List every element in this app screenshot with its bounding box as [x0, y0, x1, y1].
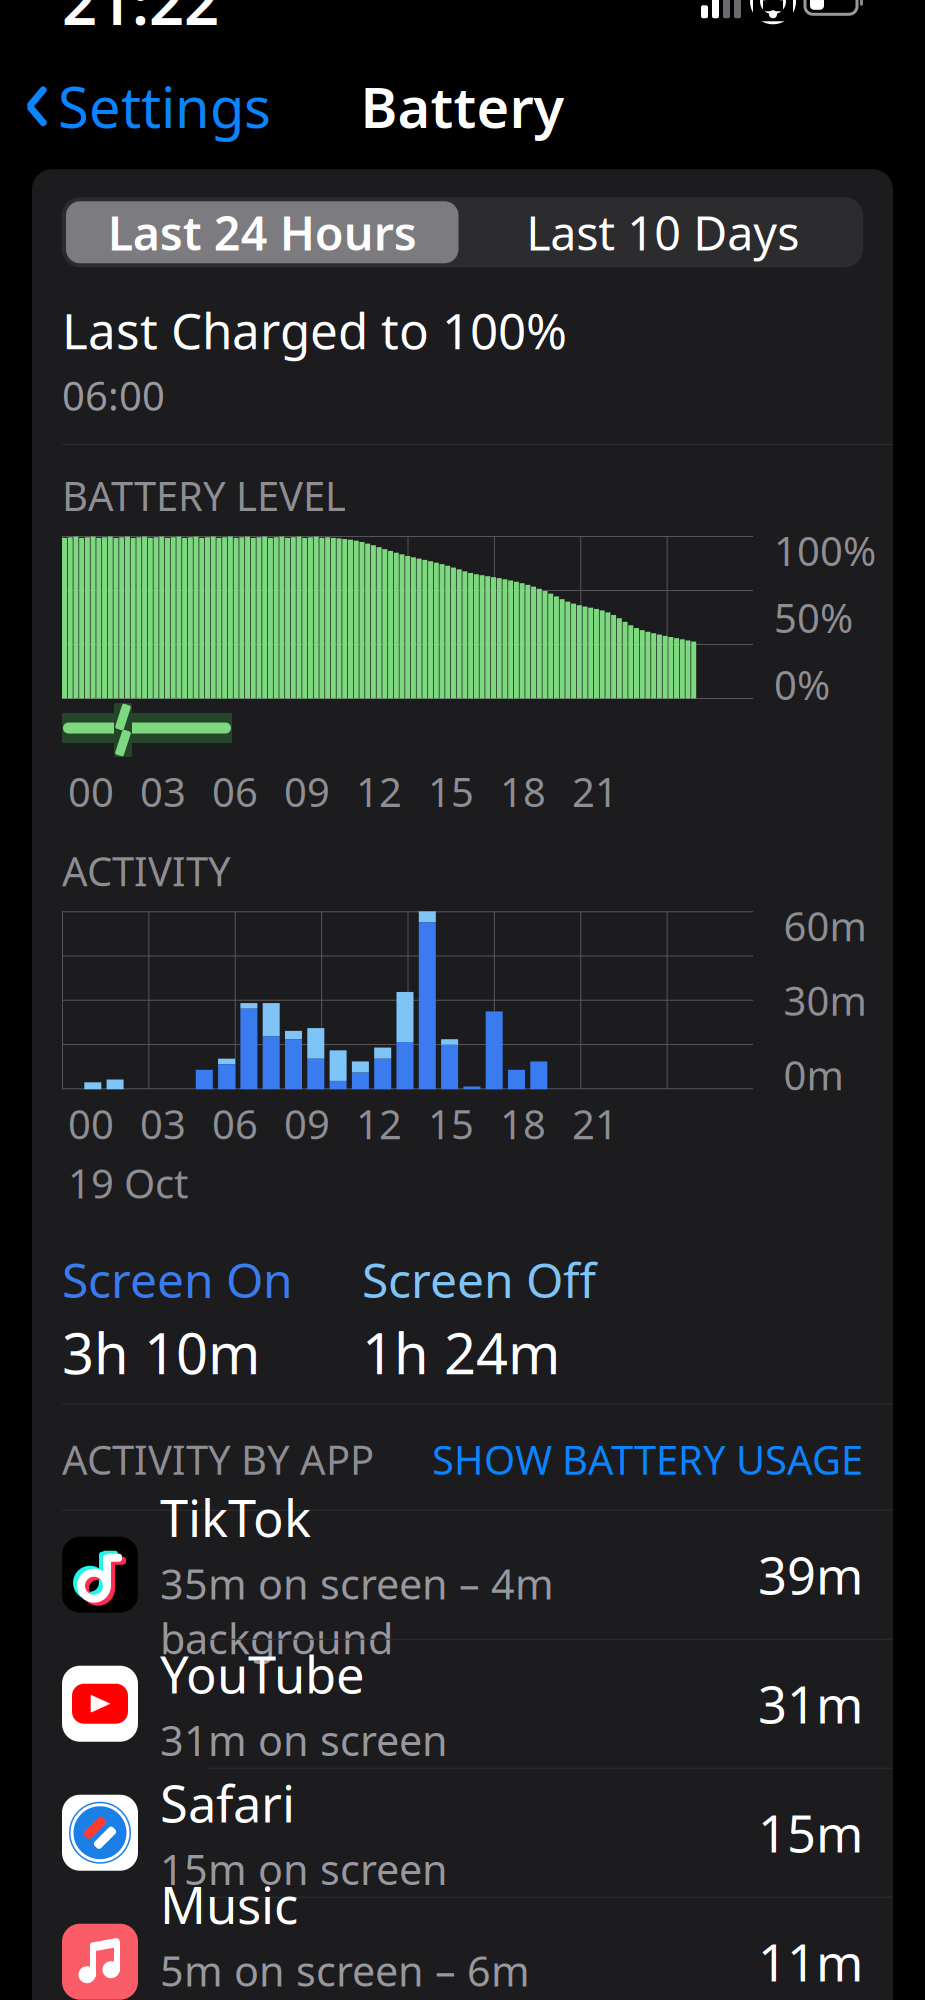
- staticText: 18: [500, 765, 546, 818]
- staticText: Music: [160, 1871, 298, 1938]
- staticText: 15: [428, 765, 474, 818]
- staticText: Battery: [360, 69, 564, 143]
- button[interactable]: Settings: [8, 57, 289, 155]
- staticText: 15: [428, 1097, 474, 1150]
- button[interactable]: Last 24 Hours: [62, 197, 462, 267]
- staticText: BATTERY LEVEL: [62, 469, 346, 522]
- staticText: TikTok: [160, 1484, 311, 1551]
- staticText: Last 10 Days: [526, 201, 799, 263]
- staticText: 21: [572, 1097, 618, 1150]
- staticText: 00: [68, 1097, 114, 1150]
- button[interactable]: Safari: [32, 1769, 893, 1897]
- staticText: 03: [140, 1097, 186, 1150]
- staticText: 11m: [758, 1928, 863, 1995]
- staticText: 31m: [758, 1670, 863, 1737]
- staticText: ACTIVITY: [62, 844, 231, 897]
- staticText: 0m: [783, 1048, 843, 1101]
- staticText: Last Charged to 100%: [62, 297, 567, 363]
- staticText: SHOW BATTERY USAGE: [432, 1433, 863, 1486]
- staticText: 3h 10m: [62, 1315, 260, 1390]
- staticText: 1h 24m: [362, 1315, 560, 1390]
- staticText: 30m: [783, 974, 866, 1027]
- staticText: 0%: [774, 658, 830, 711]
- staticText: 15m on screen: [160, 1841, 448, 1896]
- staticText: 00: [68, 765, 114, 818]
- staticText: 50%: [774, 591, 853, 644]
- staticText: 19 Oct: [68, 1156, 188, 1209]
- staticText: YouTube: [160, 1640, 365, 1707]
- button[interactable]: SHOW BATTERY USAGE: [432, 1427, 863, 1492]
- staticText: 100%: [774, 524, 876, 577]
- staticText: 12: [356, 765, 402, 818]
- staticText: 21: [572, 765, 618, 818]
- staticText: Last 24 Hours: [108, 201, 417, 263]
- staticText: 09: [284, 1097, 330, 1150]
- button[interactable]: Last 10 Days: [462, 197, 863, 267]
- button[interactable]: TikTok: [32, 1511, 893, 1639]
- staticText: Screen Off: [362, 1247, 596, 1311]
- staticText: Screen On: [62, 1247, 293, 1311]
- staticText: 06: [212, 1097, 258, 1150]
- staticText: 12: [356, 1097, 402, 1150]
- button[interactable]: YouTube: [32, 1640, 893, 1768]
- staticText: 06: [212, 765, 258, 818]
- staticText: 06:00: [62, 369, 165, 422]
- staticText: 15m: [758, 1799, 863, 1866]
- staticText: Safari: [160, 1769, 295, 1836]
- staticText: 21:22: [62, 0, 219, 42]
- staticText: 03: [140, 765, 186, 818]
- staticText: 35m on screen – 4m background: [160, 1556, 554, 1666]
- staticText: 31m on screen: [160, 1712, 448, 1767]
- staticText: 5m on screen – 6m background: [160, 1943, 530, 2000]
- staticText: 39m: [758, 1541, 863, 1608]
- staticText: 60m: [783, 899, 866, 952]
- staticText: 18: [500, 1097, 546, 1150]
- staticText: 09: [284, 765, 330, 818]
- staticText: ACTIVITY BY APP: [62, 1433, 374, 1486]
- button[interactable]: Music: [32, 1898, 893, 2000]
- staticText: Settings: [58, 69, 271, 143]
